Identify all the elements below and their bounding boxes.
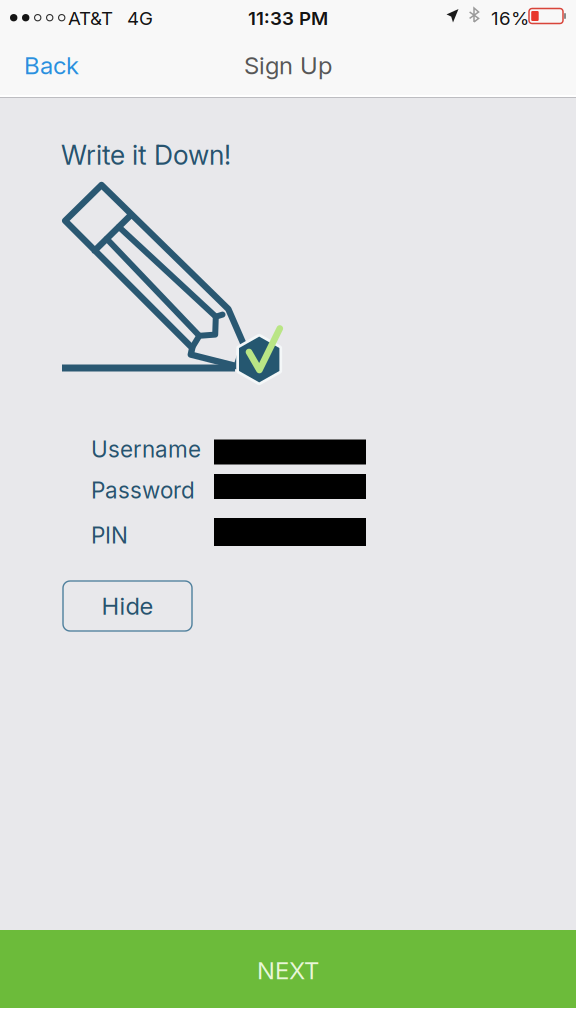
staticText: Sign Up [244, 51, 332, 80]
staticText: Username [91, 435, 201, 463]
staticText: AT&T [68, 7, 113, 30]
button[interactable]: Back [0, 38, 99, 99]
staticText: NEXT [257, 956, 319, 985]
button[interactable]: Hide [63, 581, 192, 631]
staticText: Password [91, 476, 195, 504]
staticText: Write it Down! [61, 139, 231, 171]
staticText: 4G [127, 7, 153, 30]
staticText: 11:33 PM [248, 7, 328, 30]
staticText: Hide [101, 591, 153, 620]
staticText: Back [24, 51, 79, 80]
staticText: PIN [91, 521, 128, 549]
button[interactable]: NEXT [0, 930, 576, 1008]
staticText: 16% [491, 7, 529, 30]
